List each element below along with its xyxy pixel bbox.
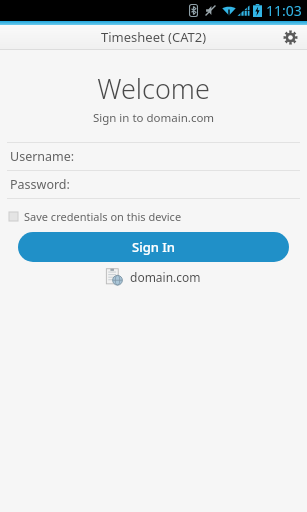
staticText: Username: (10, 148, 75, 165)
staticText: Sign in to domain.com (0, 110, 307, 126)
staticText: domain.com (130, 269, 201, 285)
button[interactable]: Sign In (18, 232, 289, 262)
staticText: Sign In (132, 238, 176, 256)
button[interactable]: Password: (0, 171, 307, 198)
staticText: Password: (10, 176, 70, 193)
staticText: Save credentials on this device (24, 209, 182, 224)
staticText: 11:03 (266, 1, 302, 20)
button[interactable]: Save credentials on this device (0, 207, 307, 226)
staticText: Welcome (0, 70, 307, 107)
button[interactable]: Settings (277, 24, 303, 50)
button[interactable]: Username: (0, 143, 307, 170)
staticText: Timesheet (CAT2) (101, 28, 207, 46)
